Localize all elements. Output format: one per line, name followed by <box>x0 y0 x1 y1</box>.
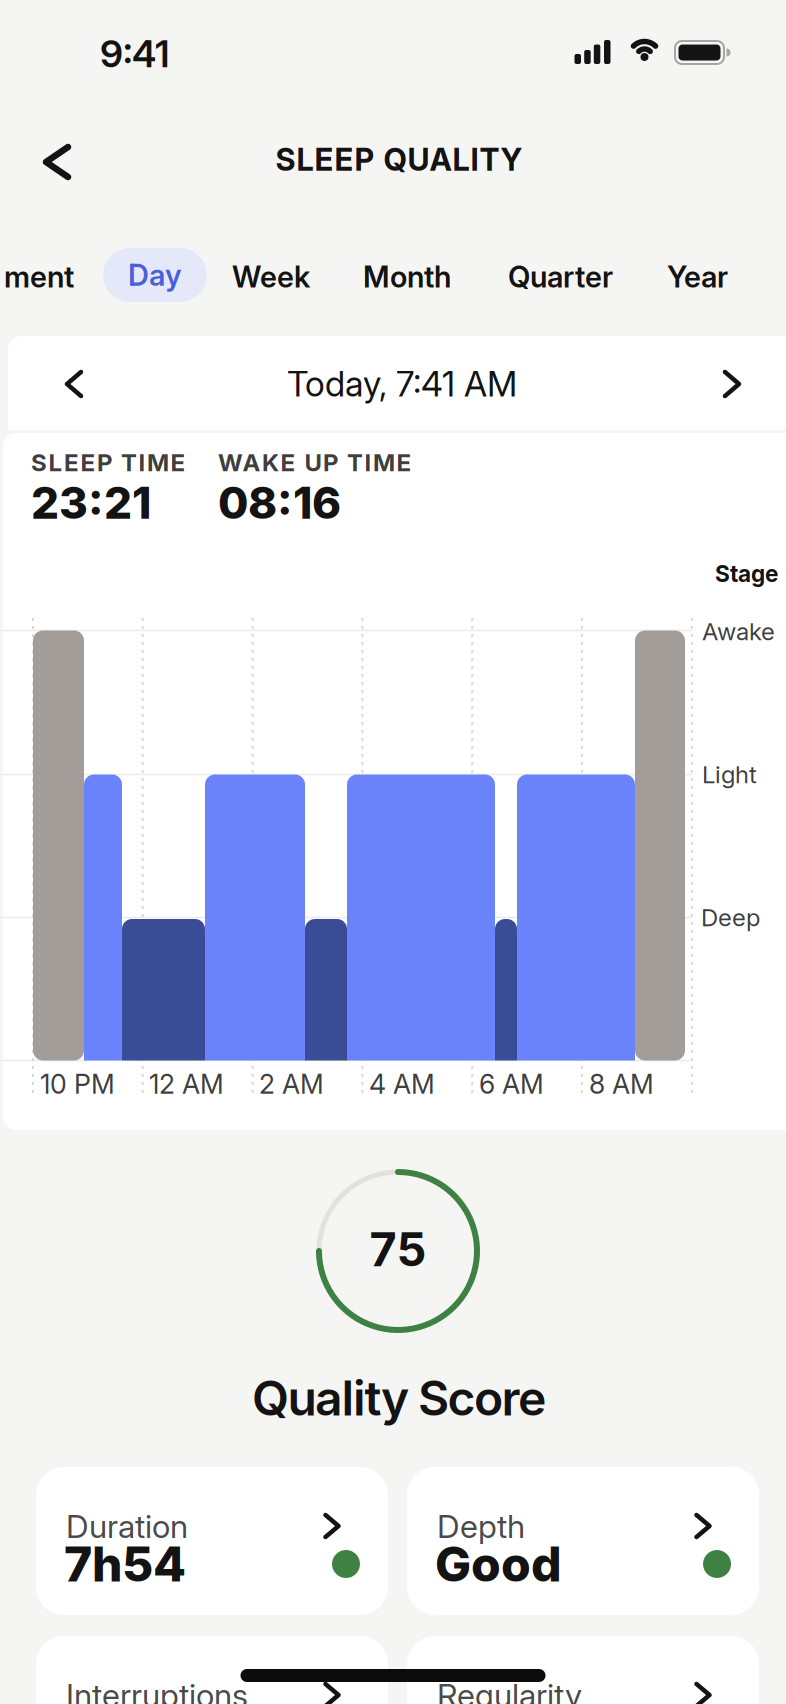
staticText: Regularity <box>437 1676 582 1704</box>
button[interactable]: ment <box>4 259 74 294</box>
button[interactable]: Day <box>103 248 207 302</box>
staticText: 2 AM <box>259 1068 324 1100</box>
staticText: Awake <box>702 617 775 646</box>
staticText: 08:16 <box>218 476 341 529</box>
staticText: Year <box>667 259 728 294</box>
button[interactable]: Week <box>232 259 310 294</box>
button[interactable] <box>44 354 104 414</box>
button[interactable] <box>702 354 762 414</box>
staticText: 4 AM <box>369 1068 435 1100</box>
button[interactable]: Depth <box>407 1467 759 1615</box>
button[interactable] <box>7 112 107 212</box>
staticText: Duration <box>66 1507 188 1546</box>
staticText: Month <box>363 259 451 294</box>
staticText: Light <box>702 760 757 789</box>
staticText: Depth <box>437 1507 525 1546</box>
staticText: WAKE UP TIME <box>218 448 411 477</box>
staticText: 75 <box>369 1221 426 1277</box>
button[interactable]: Regularity <box>407 1636 759 1704</box>
staticText: Day <box>128 257 182 293</box>
staticText: Today, 7:41 AM <box>287 363 517 405</box>
staticText: 23:21 <box>31 476 151 529</box>
staticText: ment <box>4 259 74 294</box>
button[interactable]: Interruptions <box>36 1636 388 1704</box>
staticText: 10 PM <box>40 1068 115 1100</box>
button[interactable]: Today, 7:41 AM <box>0 0 786 42</box>
button[interactable]: Duration <box>36 1467 388 1615</box>
button[interactable]: Quarter <box>508 259 613 294</box>
button[interactable]: Year <box>667 259 728 294</box>
staticText: Deep <box>701 903 760 932</box>
staticText: SLEEP QUALITY <box>275 141 522 178</box>
staticText: Quarter <box>508 259 613 294</box>
staticText: 6 AM <box>479 1068 544 1100</box>
staticText: SLEEP TIME <box>31 448 185 477</box>
staticText: Good <box>435 1535 562 1593</box>
staticText: 9:41 <box>100 31 170 76</box>
staticText: 8 AM <box>589 1068 654 1100</box>
staticText: Interruptions <box>66 1676 248 1704</box>
staticText: 7h54 <box>64 1535 186 1593</box>
staticText: Week <box>232 259 310 294</box>
staticText: Quality Score <box>252 1369 546 1427</box>
button[interactable]: Month <box>363 259 451 294</box>
staticText: 12 AM <box>149 1068 224 1100</box>
staticText: Stage <box>715 560 778 587</box>
